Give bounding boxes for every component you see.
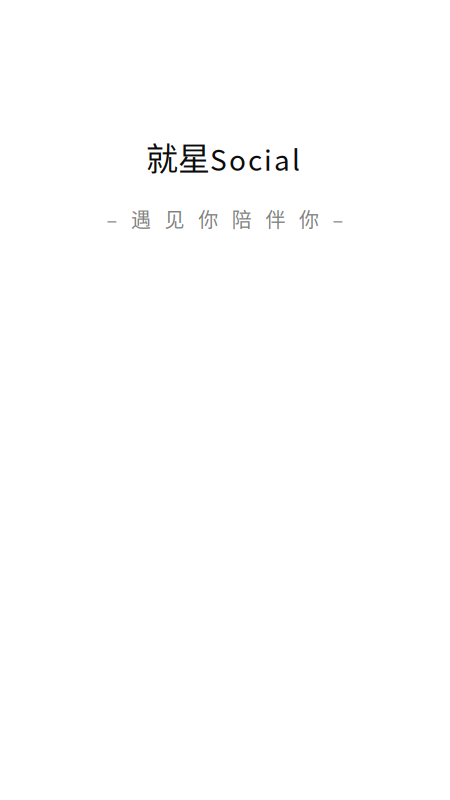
- staticText: –遇见你陪伴你–: [106, 204, 344, 233]
- staticText: 就星S o c i a l: [146, 134, 300, 179]
